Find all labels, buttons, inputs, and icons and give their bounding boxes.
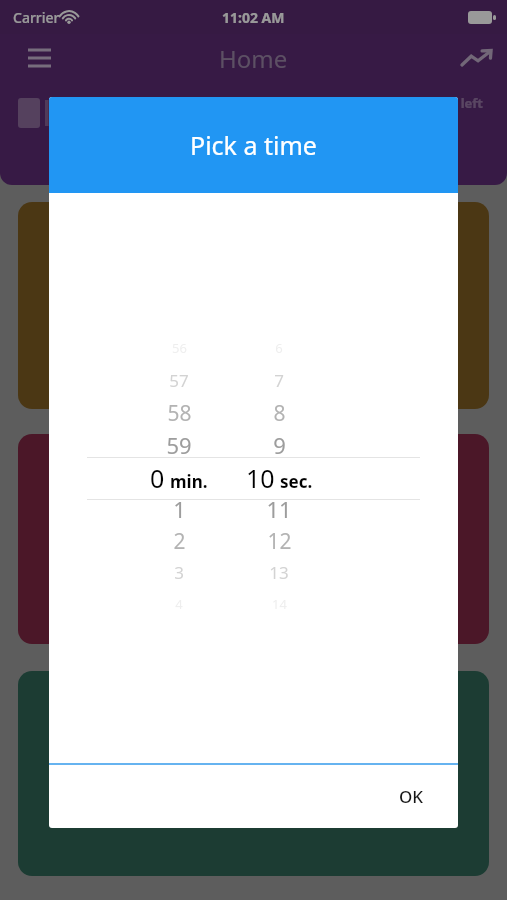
staticText: 11:02 AM [222, 8, 285, 27]
button[interactable]: OK [387, 775, 436, 818]
button[interactable]: 0 [117, 461, 241, 495]
staticText: min. [170, 470, 208, 493]
staticText: 9 [273, 430, 286, 460]
button[interactable]: Statistics [456, 38, 496, 78]
staticText: 59 [166, 430, 192, 460]
staticText: 3 [174, 561, 184, 584]
staticText: 10 [246, 461, 275, 495]
staticText: 4 [175, 595, 183, 613]
button[interactable] [18, 202, 489, 409]
button[interactable] [18, 434, 489, 644]
staticText: 0 [150, 461, 165, 495]
staticText: battery left [409, 94, 483, 112]
button[interactable]: Menu [21, 40, 57, 76]
staticText: 57 [169, 369, 189, 392]
button[interactable] [18, 671, 489, 876]
staticText: 56 [172, 339, 187, 357]
staticText: 2 [173, 527, 186, 556]
staticText: Home [219, 42, 288, 75]
staticText: 7 [274, 369, 284, 392]
staticText: Carrier [13, 8, 60, 27]
staticText: 11 [266, 494, 292, 524]
staticText: 6 [275, 339, 283, 357]
staticText: 12 [267, 527, 292, 556]
staticText: 1 [173, 494, 186, 524]
staticText: 8 [273, 399, 286, 428]
staticText: sec. [280, 470, 313, 493]
staticText: 13 [269, 561, 289, 584]
staticText: 58 [167, 399, 192, 428]
staticText: 14 [272, 595, 287, 613]
button[interactable]: 10 [217, 461, 341, 495]
staticText: OK [399, 785, 424, 808]
staticText: Pick a time [190, 128, 317, 162]
